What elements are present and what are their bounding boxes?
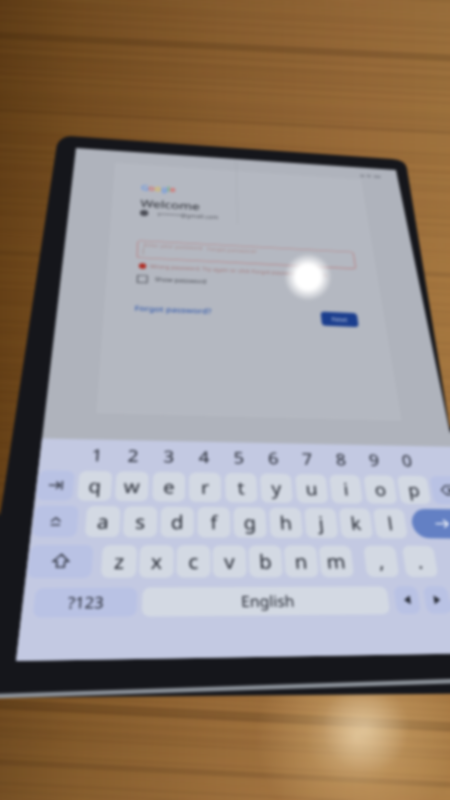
button[interactable] [0,0,450,800]
